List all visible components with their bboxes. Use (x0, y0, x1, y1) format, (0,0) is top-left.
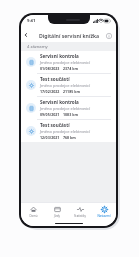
staticText: Digitální servisní knížka (39, 32, 99, 39)
button[interactable]: Test součástí (21, 120, 116, 142)
staticText: 21185 km (63, 89, 80, 94)
button[interactable]: Domů (22, 205, 44, 219)
staticText: Domů (29, 214, 38, 218)
staticText: Statistiky (74, 214, 86, 218)
staticText: Test součástí (40, 122, 70, 128)
staticText: 12/03/2021 (40, 135, 60, 140)
staticText: Jméno prodejce elektronicí (40, 60, 91, 65)
button[interactable]: Statistiky (69, 205, 91, 219)
button[interactable]: Servisní kontrola (21, 97, 116, 119)
staticText: 1083 km (63, 112, 78, 117)
staticText: Jméno prodejce elektronicí (40, 83, 91, 88)
staticText: 2374 km (63, 66, 78, 71)
staticText: 768 km (63, 135, 76, 140)
button[interactable]: Nastavení (93, 205, 115, 219)
staticText: Servisní kontrola (40, 53, 79, 59)
staticText: Jízdy (54, 214, 60, 218)
button[interactable]: Test součástí (21, 74, 116, 96)
staticText: 09/05/2021 (40, 112, 60, 117)
staticText: Nastavení (97, 214, 111, 218)
button[interactable]: Jízdy (46, 205, 68, 219)
staticText: Test součástí (40, 76, 70, 82)
staticText: Jméno prodejce elektronicí (40, 106, 91, 111)
staticText: 01/08/2023 (40, 66, 60, 71)
staticText: 17/02/2022 (40, 89, 60, 94)
staticText: 9:41 (27, 18, 36, 24)
staticText: Servisní kontrola (40, 99, 79, 105)
staticText: 4 záznamy (27, 44, 48, 50)
button[interactable]: Servisní kontrola (21, 51, 116, 73)
staticText: Jméno prodejce elektronicí (40, 129, 91, 134)
button[interactable]: Back (21, 30, 31, 40)
button[interactable]: Info (104, 31, 113, 40)
